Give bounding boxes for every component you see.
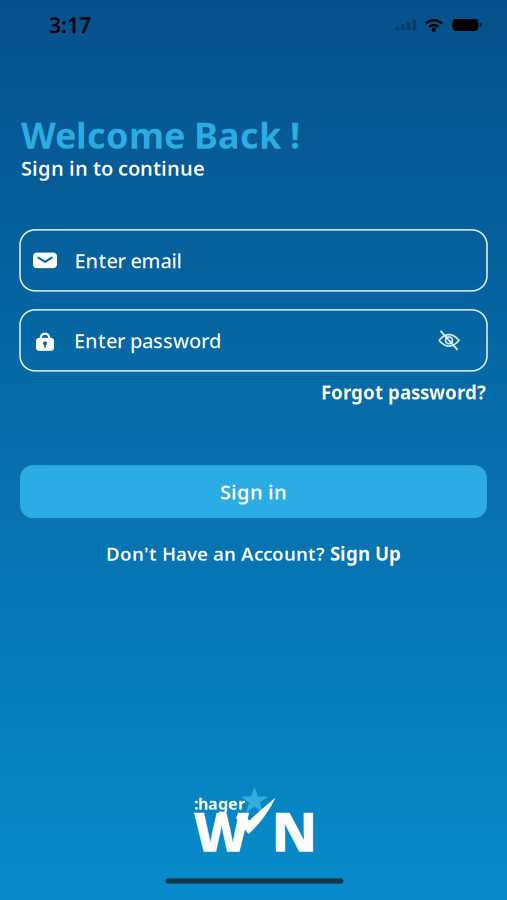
- staticText: :hager: [194, 793, 245, 814]
- staticText: Welcome Back !: [21, 111, 300, 159]
- button[interactable]: Forgot password?: [321, 380, 486, 405]
- button[interactable]: Sign in: [20, 465, 487, 518]
- button[interactable]: Sign Up: [330, 541, 401, 566]
- button[interactable]: Enter email: [20, 230, 487, 291]
- staticText: Sign Up: [330, 541, 401, 566]
- button[interactable]: Show password: [438, 333, 487, 347]
- button[interactable]: Enter password: [20, 310, 487, 371]
- staticText: N: [271, 794, 317, 867]
- staticText: Sign in to continue: [21, 155, 205, 181]
- staticText: Enter password: [74, 327, 221, 354]
- staticText: 3:17: [49, 11, 91, 39]
- staticText: Don't Have an Account?: [106, 541, 325, 566]
- staticText: Sign in: [220, 478, 287, 505]
- staticText: W: [193, 794, 250, 867]
- staticText: Enter email: [74, 247, 181, 274]
- staticText: Forgot password?: [321, 380, 486, 405]
